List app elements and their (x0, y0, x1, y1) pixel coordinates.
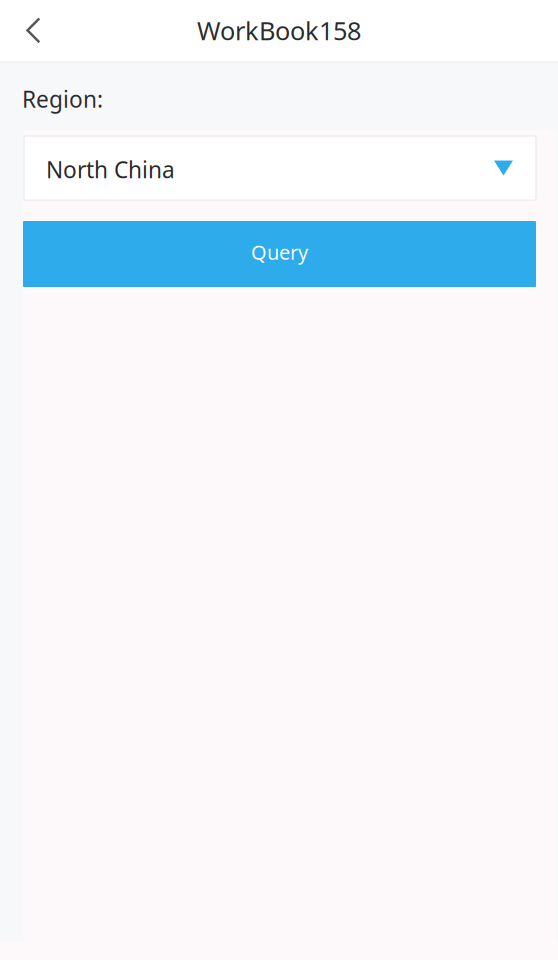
staticText: North China (46, 154, 175, 184)
staticText: Region: (22, 84, 103, 114)
button[interactable]: Back (9, 6, 57, 54)
staticText: Query (251, 239, 308, 265)
staticText: WorkBook158 (197, 14, 361, 47)
button[interactable]: Query (23, 221, 536, 287)
button[interactable]: North China (24, 136, 536, 200)
